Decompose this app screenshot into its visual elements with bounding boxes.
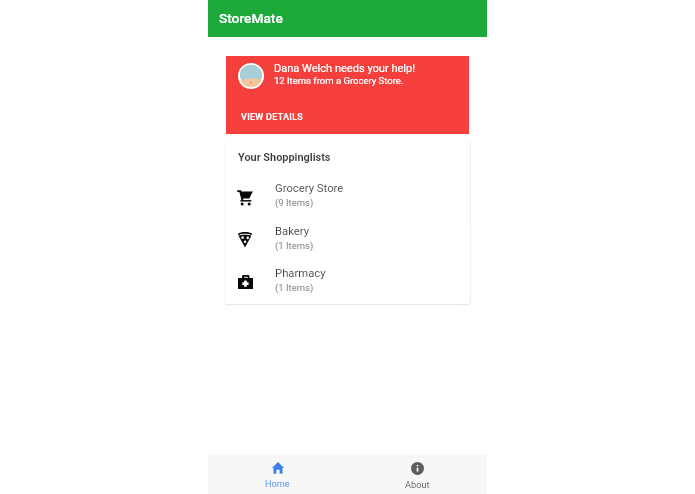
other: About — [411, 462, 424, 475]
staticText: About — [405, 479, 430, 490]
staticText: Your Shoppinglists — [238, 151, 331, 164]
button[interactable]: Grocery Store — [225, 173, 470, 216]
button[interactable]: About — [347, 455, 487, 494]
staticText: Home — [265, 478, 290, 489]
other: Home — [272, 462, 284, 474]
staticText: StoreMate — [219, 10, 283, 26]
staticText: Bakery — [275, 225, 310, 238]
button[interactable]: Pharmacy — [225, 258, 470, 301]
button[interactable]: Home — [208, 455, 347, 494]
staticText: Dana Welch needs your help! — [274, 62, 416, 75]
button[interactable]: VIEW DETAILS — [241, 112, 304, 123]
staticText: Grocery Store — [275, 182, 344, 195]
staticText: (1 Items) — [275, 240, 314, 251]
staticText: (9 Items) — [275, 197, 314, 208]
staticText: VIEW DETAILS — [241, 112, 304, 123]
button[interactable]: Bakery — [225, 216, 470, 259]
staticText: Pharmacy — [275, 267, 326, 280]
staticText: 12 Items from a Grocery Store. — [274, 75, 404, 86]
button[interactable]: Dana Welch needs your help! — [226, 56, 469, 134]
staticText: (1 Items) — [275, 282, 314, 293]
